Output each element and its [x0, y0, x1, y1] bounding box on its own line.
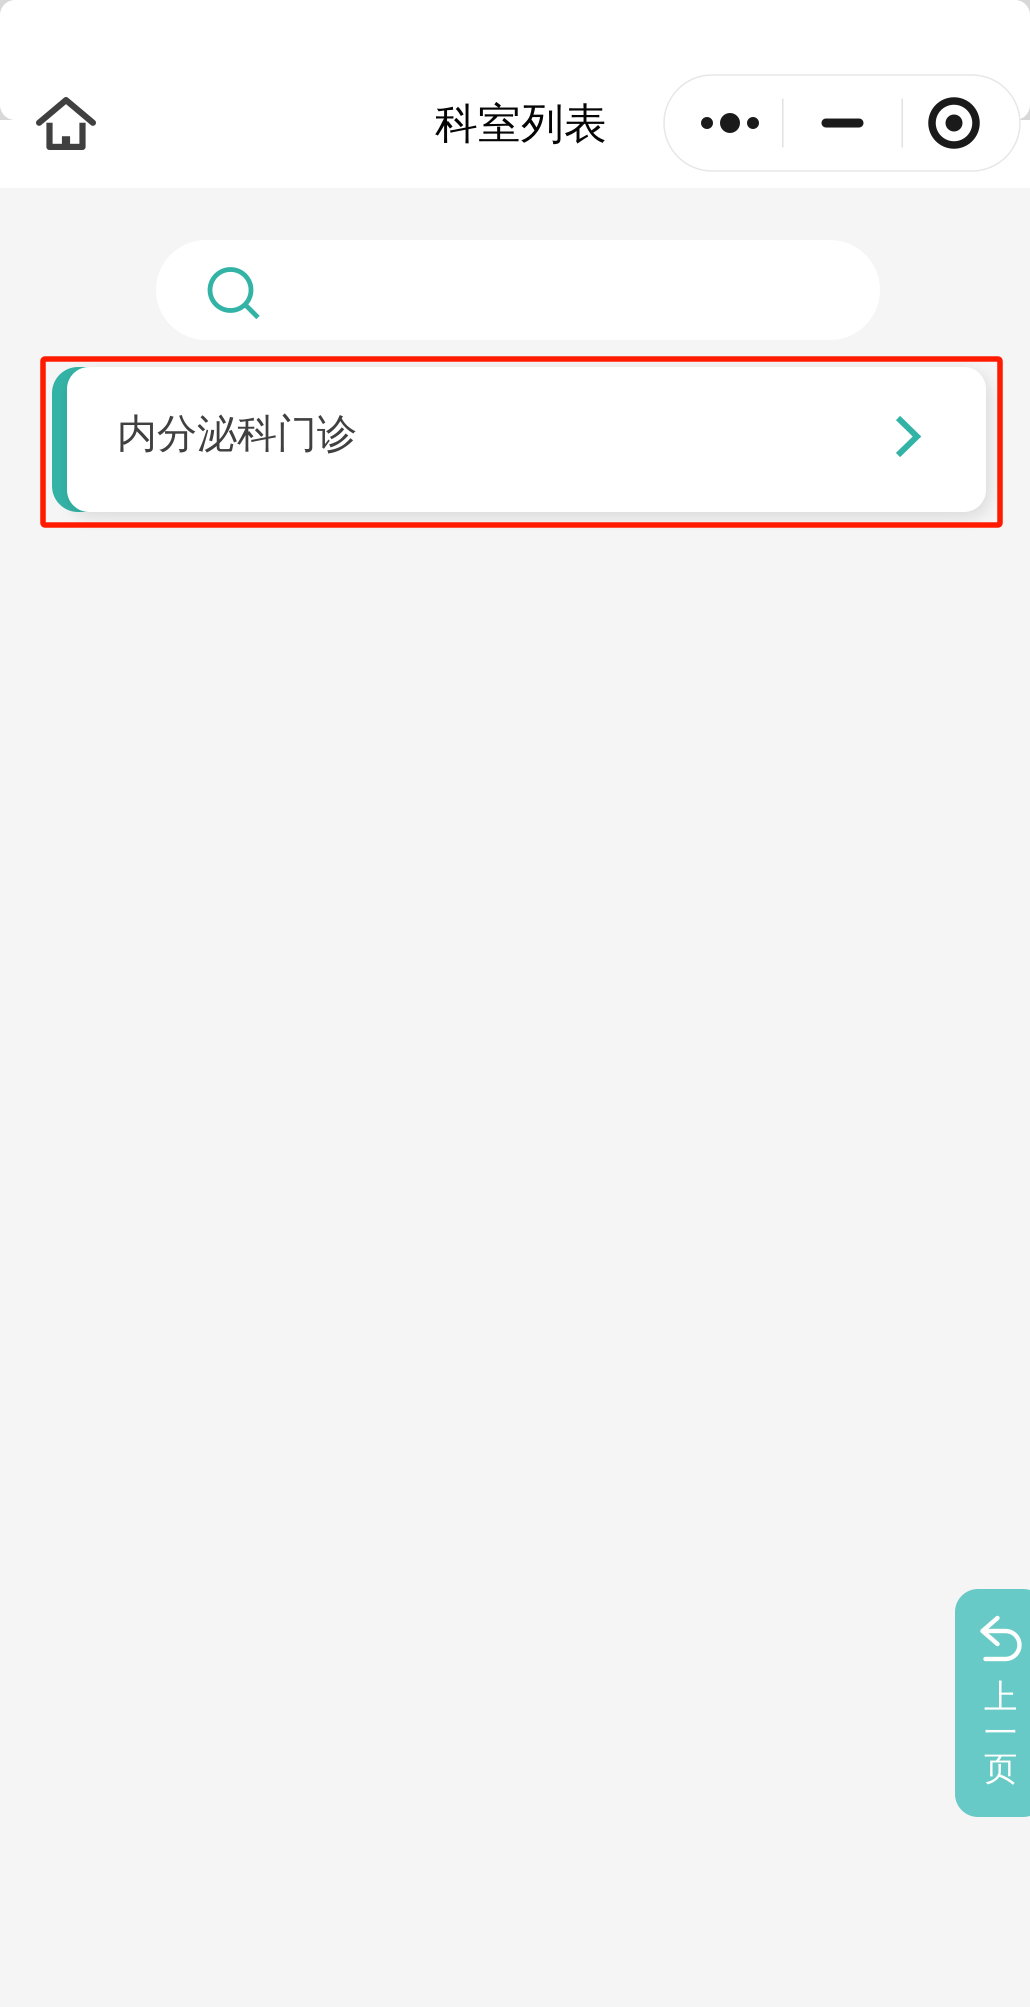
button[interactable]: 内分泌科门诊	[0, 356, 1030, 528]
button[interactable]: Search	[156, 240, 880, 340]
staticText: 上	[984, 1676, 1017, 1717]
staticText: 页	[984, 1748, 1017, 1789]
staticText: 科室列表	[435, 98, 607, 150]
button[interactable]: Minimize	[783, 75, 901, 171]
staticText: 内分泌科门诊	[117, 409, 357, 458]
button[interactable]: Home	[0, 58, 126, 188]
staticText: 一	[984, 1712, 1017, 1753]
button[interactable]: Previous page	[955, 1589, 1030, 1817]
button[interactable]: Close mini program	[903, 75, 1020, 171]
button[interactable]: More	[664, 75, 782, 171]
